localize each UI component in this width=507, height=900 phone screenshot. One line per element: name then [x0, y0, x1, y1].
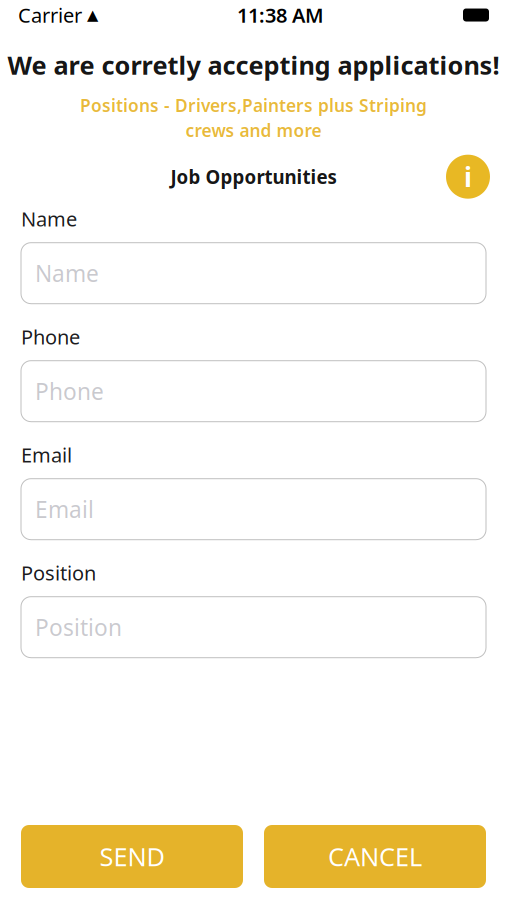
staticText: 11:38 AM — [237, 2, 324, 28]
staticText: SEND — [99, 840, 164, 873]
button[interactable]: Position — [21, 597, 486, 658]
staticText: Carrier — [18, 2, 82, 28]
staticText: Job Opportunities — [170, 164, 336, 189]
button[interactable]: Phone — [21, 361, 486, 422]
staticText: Position — [35, 612, 122, 642]
button[interactable]: SEND — [21, 825, 243, 888]
staticText: Email — [35, 494, 94, 524]
staticText: Phone — [35, 376, 104, 406]
staticText: CANCEL — [328, 840, 422, 873]
staticText: Name — [35, 258, 99, 288]
staticText: We are corretly accepting applications! — [7, 48, 499, 82]
button[interactable]: Email — [21, 479, 486, 540]
staticText: Phone — [21, 323, 80, 350]
staticText: Name — [21, 205, 77, 232]
staticText: crews and more — [185, 119, 321, 142]
button[interactable]: Information — [446, 155, 490, 199]
staticText: ▲ — [87, 7, 98, 23]
staticText: Positions - Drivers,Painters plus Stripi… — [80, 94, 427, 117]
staticText: i — [464, 159, 472, 194]
staticText: Position — [21, 559, 96, 586]
button[interactable]: Name — [21, 243, 486, 304]
staticText: Email — [21, 441, 72, 468]
button[interactable]: CANCEL — [264, 825, 486, 888]
